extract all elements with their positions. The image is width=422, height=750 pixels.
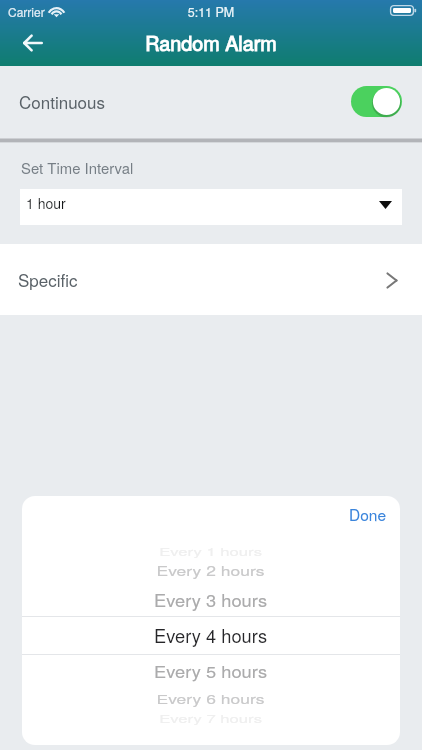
staticText: Every 3 hours — [154, 588, 268, 612]
button[interactable]: 1 hour — [20, 189, 402, 225]
staticText: Specific — [18, 267, 78, 291]
button[interactable]: Every 5 hours — [22, 656, 400, 686]
button[interactable]: Every 7 hours — [22, 703, 400, 733]
staticText: Carrier — [8, 3, 45, 20]
staticText: Set Time Interval — [21, 157, 134, 178]
staticText: Every 6 hours — [157, 690, 265, 708]
button[interactable]: Back — [14, 29, 52, 57]
staticText: Every 5 hours — [154, 660, 268, 682]
button[interactable]: Continuous — [0, 66, 422, 138]
button[interactable]: Every 2 hours — [22, 555, 400, 585]
button[interactable]: Every 4 hours — [22, 620, 400, 650]
staticText: Continuous — [19, 89, 105, 113]
button[interactable]: Every 3 hours — [22, 585, 400, 615]
staticText: 5:11 PM — [0, 3, 422, 21]
button[interactable]: Done — [342, 501, 394, 527]
staticText: Done — [349, 503, 387, 525]
staticText: Every 2 hours — [157, 560, 265, 580]
button[interactable]: Every 6 hours — [22, 684, 400, 714]
staticText: Random Alarm — [0, 28, 422, 56]
staticText: Every 4 hours — [154, 622, 268, 648]
button[interactable]: Continuous — [351, 86, 402, 117]
staticText: Every 7 hours — [159, 711, 263, 725]
button[interactable]: Specific — [0, 244, 422, 315]
staticText: Every 1 hours — [159, 544, 263, 558]
staticText: 1 hour — [26, 193, 66, 213]
